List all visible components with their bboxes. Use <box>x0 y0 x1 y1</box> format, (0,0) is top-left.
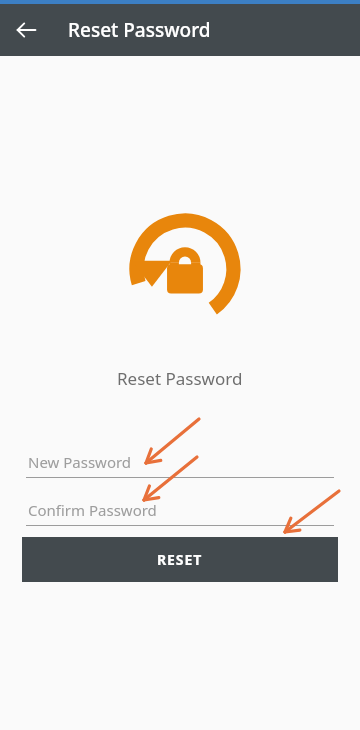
button[interactable]: RESET <box>22 537 338 582</box>
staticText: Confirm Password <box>28 500 157 520</box>
staticText: Reset Password <box>68 17 211 43</box>
button[interactable]: Confirm Password <box>28 500 308 526</box>
button[interactable]: Back <box>6 10 46 50</box>
staticText: RESET <box>157 550 203 569</box>
button[interactable]: New Password <box>28 452 308 478</box>
staticText: Reset Password <box>117 367 243 390</box>
staticText: New Password <box>28 452 132 472</box>
